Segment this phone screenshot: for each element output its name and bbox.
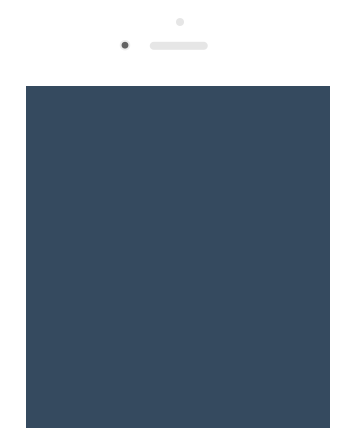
- button[interactable]: Avatar placeholder: [169, 11, 191, 33]
- button[interactable]: Title placeholder, loading: [120, 35, 207, 56]
